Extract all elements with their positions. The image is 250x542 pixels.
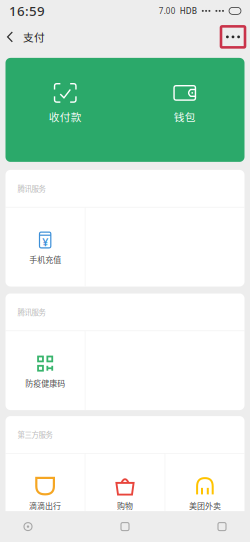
staticText: 腾讯服务 — [17, 183, 45, 194]
button[interactable]: 防疫健康码 — [5, 331, 85, 410]
button[interactable]: Back — [3, 512, 53, 542]
button[interactable]: 钱包 — [125, 58, 244, 162]
button[interactable]: Home — [100, 512, 150, 542]
staticText: 腾讯服务 — [17, 307, 45, 317]
staticText: 支付 — [23, 29, 45, 45]
staticText: 7.00 — [159, 6, 176, 16]
staticText: HDB — [180, 6, 197, 16]
staticText: 手机充值 — [29, 253, 61, 265]
staticText: 滴滴出行 — [29, 500, 61, 511]
staticText: ¥ — [42, 235, 48, 249]
staticText: 16:59 — [9, 2, 45, 20]
button[interactable]: More — [221, 22, 250, 52]
staticText: 收付款 — [49, 109, 82, 124]
staticText: 购物 — [117, 500, 133, 511]
button[interactable]: Back — [0, 22, 23, 52]
button[interactable]: 收付款 — [5, 58, 125, 162]
staticText: 第三方服务 — [17, 429, 52, 440]
staticText: 美团外卖 — [189, 500, 221, 511]
button[interactable]: Recents — [197, 512, 247, 542]
button[interactable]: ¥ — [5, 207, 85, 286]
button[interactable]: 购物 — [85, 454, 165, 533]
staticText: 钱包 — [174, 109, 196, 124]
button[interactable]: 滴滴出行 — [5, 454, 85, 533]
button[interactable]: 美团外卖 — [165, 454, 244, 533]
staticText: 防疫健康码 — [25, 377, 65, 389]
